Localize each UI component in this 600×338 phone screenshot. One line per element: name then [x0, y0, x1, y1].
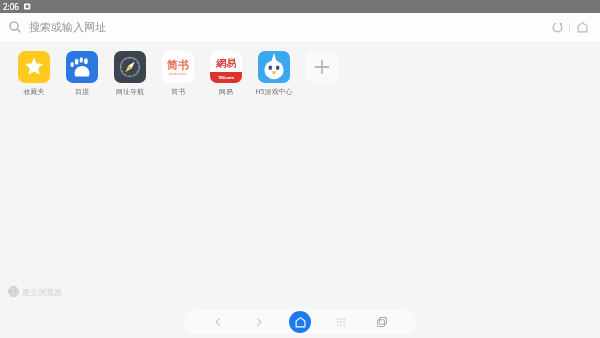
staticText: jianshu.com: [169, 72, 187, 76]
staticText: 收藏夹: [10, 87, 58, 96]
staticText: H5游戏中心: [250, 87, 298, 97]
staticText: 网址导航: [106, 87, 154, 96]
button[interactable]: H5游戏中心: [250, 49, 298, 97]
staticText: 简书: [167, 58, 189, 72]
button[interactable]: Refresh: [545, 15, 569, 39]
staticText: 简书: [154, 87, 202, 96]
button[interactable]: 搜索或输入网址: [9, 14, 545, 40]
button[interactable]: 网址导航: [106, 49, 154, 96]
button[interactable]: Back: [207, 311, 229, 333]
staticText: 星企浏览器: [22, 287, 62, 297]
staticText: 百度: [58, 87, 106, 96]
button[interactable]: 收藏夹: [10, 49, 58, 96]
button[interactable]: 百度: [58, 49, 106, 96]
staticText: 163.com: [218, 75, 235, 80]
staticText: 網易: [216, 57, 236, 70]
button[interactable]: Tabs: [371, 311, 393, 333]
staticText: 搜索或输入网址: [29, 20, 106, 34]
staticText: 网易: [202, 87, 250, 96]
button[interactable]: Forward: [248, 311, 270, 333]
staticText: 2:06: [3, 1, 19, 12]
button[interactable]: Home: [289, 311, 311, 333]
button[interactable]: 简书: [154, 49, 202, 96]
button[interactable]: Menu: [330, 311, 352, 333]
button[interactable]: Home: [570, 15, 594, 39]
button[interactable]: Add shortcut: [298, 49, 346, 83]
button[interactable]: 网易: [202, 49, 250, 96]
